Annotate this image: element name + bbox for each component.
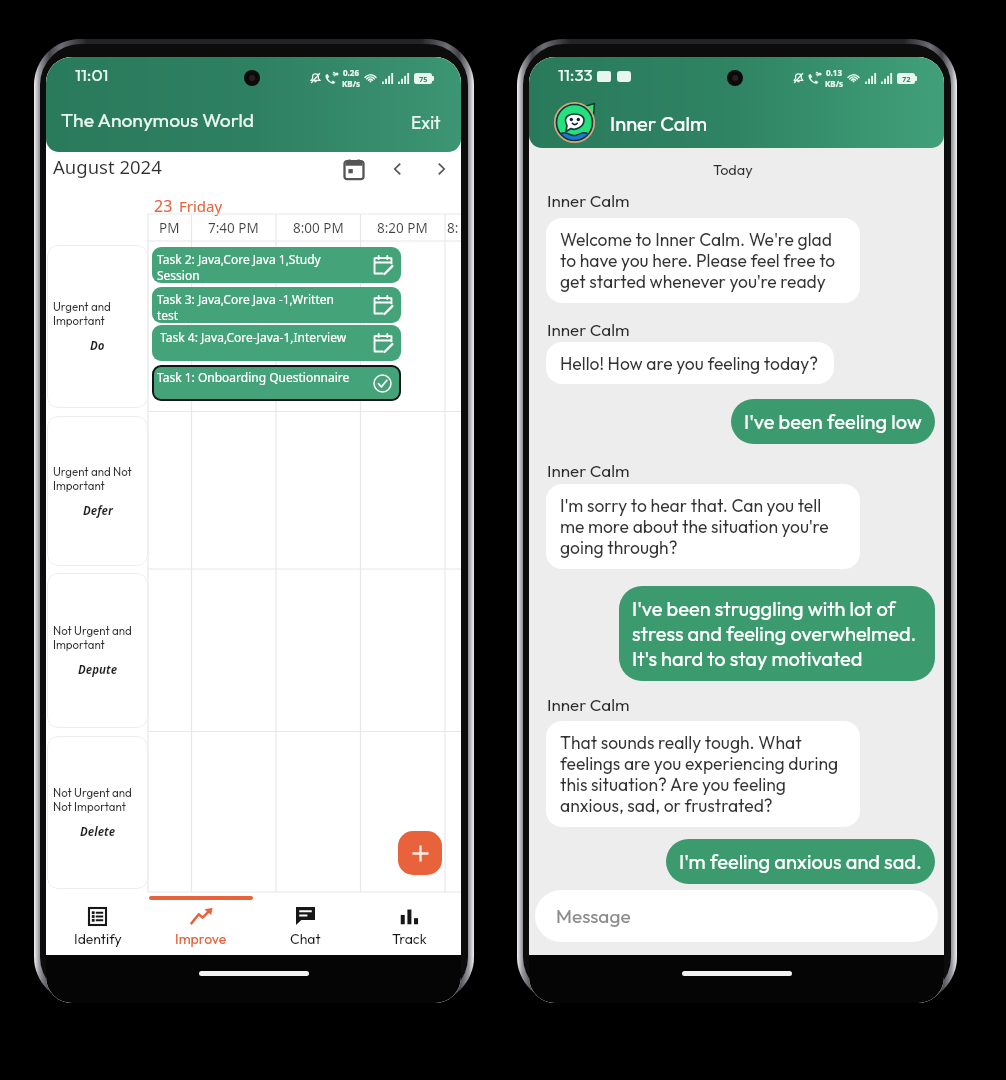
staticText: I've been feeling low bbox=[744, 409, 922, 434]
staticText: Welcome to Inner Calm. We're glad to hav… bbox=[560, 228, 845, 293]
button[interactable]: Next day bbox=[422, 150, 460, 188]
staticText: Inner Calm bbox=[547, 460, 630, 481]
staticText: Defer bbox=[83, 503, 113, 519]
button[interactable]: I'm sorry to hear that. Can you tell me … bbox=[546, 484, 860, 569]
button[interactable]: Welcome to Inner Calm. We're glad to hav… bbox=[546, 218, 860, 303]
staticText: Inner Calm bbox=[547, 190, 630, 211]
staticText: I'm feeling anxious and sad. bbox=[679, 849, 922, 874]
button[interactable]: Previous day bbox=[379, 150, 417, 188]
staticText: 8: bbox=[447, 219, 459, 237]
staticText: KB/s bbox=[825, 78, 843, 89]
staticText: Not Important bbox=[53, 799, 126, 813]
staticText: 11:01 bbox=[75, 64, 109, 85]
button[interactable]: Task 4: Java,Core-Java-1,Interview bbox=[152, 325, 401, 361]
button[interactable]: I've been feeling low bbox=[731, 399, 935, 444]
staticText: KB/s bbox=[342, 78, 360, 89]
button[interactable]: Message bbox=[535, 890, 938, 942]
staticText: Important bbox=[53, 637, 105, 651]
staticText: Inner Calm bbox=[547, 319, 630, 340]
staticText: Important bbox=[53, 478, 105, 492]
staticText: Chat bbox=[290, 930, 321, 948]
button[interactable]: Task 1: Onboarding Questionnaire bbox=[152, 365, 401, 401]
staticText: Depute bbox=[78, 662, 118, 678]
staticText: Exit bbox=[411, 111, 441, 133]
staticText: 8:00 PM bbox=[293, 219, 344, 237]
button[interactable]: That sounds really tough. What feelings … bbox=[546, 721, 860, 827]
staticText: Task 1: Onboarding Questionnaire bbox=[157, 369, 350, 385]
button[interactable]: Hello! How are you feeling today? bbox=[546, 342, 834, 384]
staticText: Not Urgent and bbox=[53, 623, 132, 637]
staticText: 72 bbox=[902, 74, 911, 84]
staticText: Task 3: Java,Core Java -1,Written test bbox=[157, 291, 349, 323]
button[interactable]: Identify bbox=[46, 896, 149, 955]
button[interactable]: Improve bbox=[149, 896, 253, 955]
button[interactable]: Track bbox=[357, 896, 461, 955]
staticText: Task 2: Java,Core Java 1,Study Session bbox=[157, 251, 349, 283]
button[interactable]: Urgent and bbox=[47, 245, 148, 408]
button[interactable]: Not Urgent and bbox=[47, 573, 148, 728]
staticText: Inner Calm bbox=[547, 694, 630, 715]
staticText: Hello! How are you feeling today? bbox=[560, 352, 819, 374]
button[interactable]: I'm feeling anxious and sad. bbox=[666, 839, 935, 884]
staticText: Delete bbox=[80, 824, 116, 840]
staticText: Not Urgent and bbox=[53, 785, 132, 799]
button[interactable]: Chat bbox=[253, 896, 357, 955]
staticText: Do bbox=[90, 338, 105, 354]
staticText: Inner Calm bbox=[610, 111, 708, 136]
button[interactable]: Add task bbox=[398, 831, 442, 875]
staticText: The Anonymous World bbox=[61, 108, 254, 132]
staticText: 8:20 PM bbox=[377, 219, 428, 237]
button[interactable]: Task 3: Java,Core Java -1,Written test bbox=[152, 287, 401, 323]
button[interactable]: Task 2: Java,Core Java 1,Study Session bbox=[152, 247, 401, 283]
staticText: Urgent and Not bbox=[53, 464, 132, 478]
staticText: August 2024 bbox=[53, 154, 162, 179]
staticText: I've been struggling with lot of stress … bbox=[632, 596, 922, 671]
staticText: Important bbox=[53, 313, 105, 327]
staticText: 0.26 bbox=[343, 67, 359, 78]
staticText: 11:33 bbox=[558, 64, 593, 85]
staticText: Urgent and bbox=[53, 299, 111, 313]
button[interactable]: I've been struggling with lot of stress … bbox=[619, 586, 935, 681]
button[interactable]: Exit bbox=[402, 107, 450, 137]
staticText: I'm sorry to hear that. Can you tell me … bbox=[560, 494, 845, 559]
button[interactable]: Pick date bbox=[335, 150, 373, 188]
button[interactable]: Not Urgent and bbox=[47, 736, 148, 889]
staticText: 75 bbox=[419, 74, 428, 84]
staticText: Message bbox=[556, 904, 631, 928]
staticText: 0.13 bbox=[826, 67, 842, 78]
button[interactable]: Urgent and Not bbox=[47, 416, 148, 566]
staticText: PM bbox=[159, 219, 180, 237]
staticText: Friday bbox=[179, 196, 223, 216]
staticText: Improve bbox=[175, 930, 227, 948]
staticText: Task 4: Java,Core-Java-1,Interview bbox=[157, 329, 347, 345]
staticText: Track bbox=[392, 930, 427, 948]
staticText: That sounds really tough. What feelings … bbox=[560, 731, 845, 817]
staticText: Today bbox=[713, 160, 753, 178]
staticText: Identify bbox=[74, 930, 122, 948]
staticText: 23 bbox=[154, 195, 173, 217]
staticText: 7:40 PM bbox=[208, 219, 259, 237]
